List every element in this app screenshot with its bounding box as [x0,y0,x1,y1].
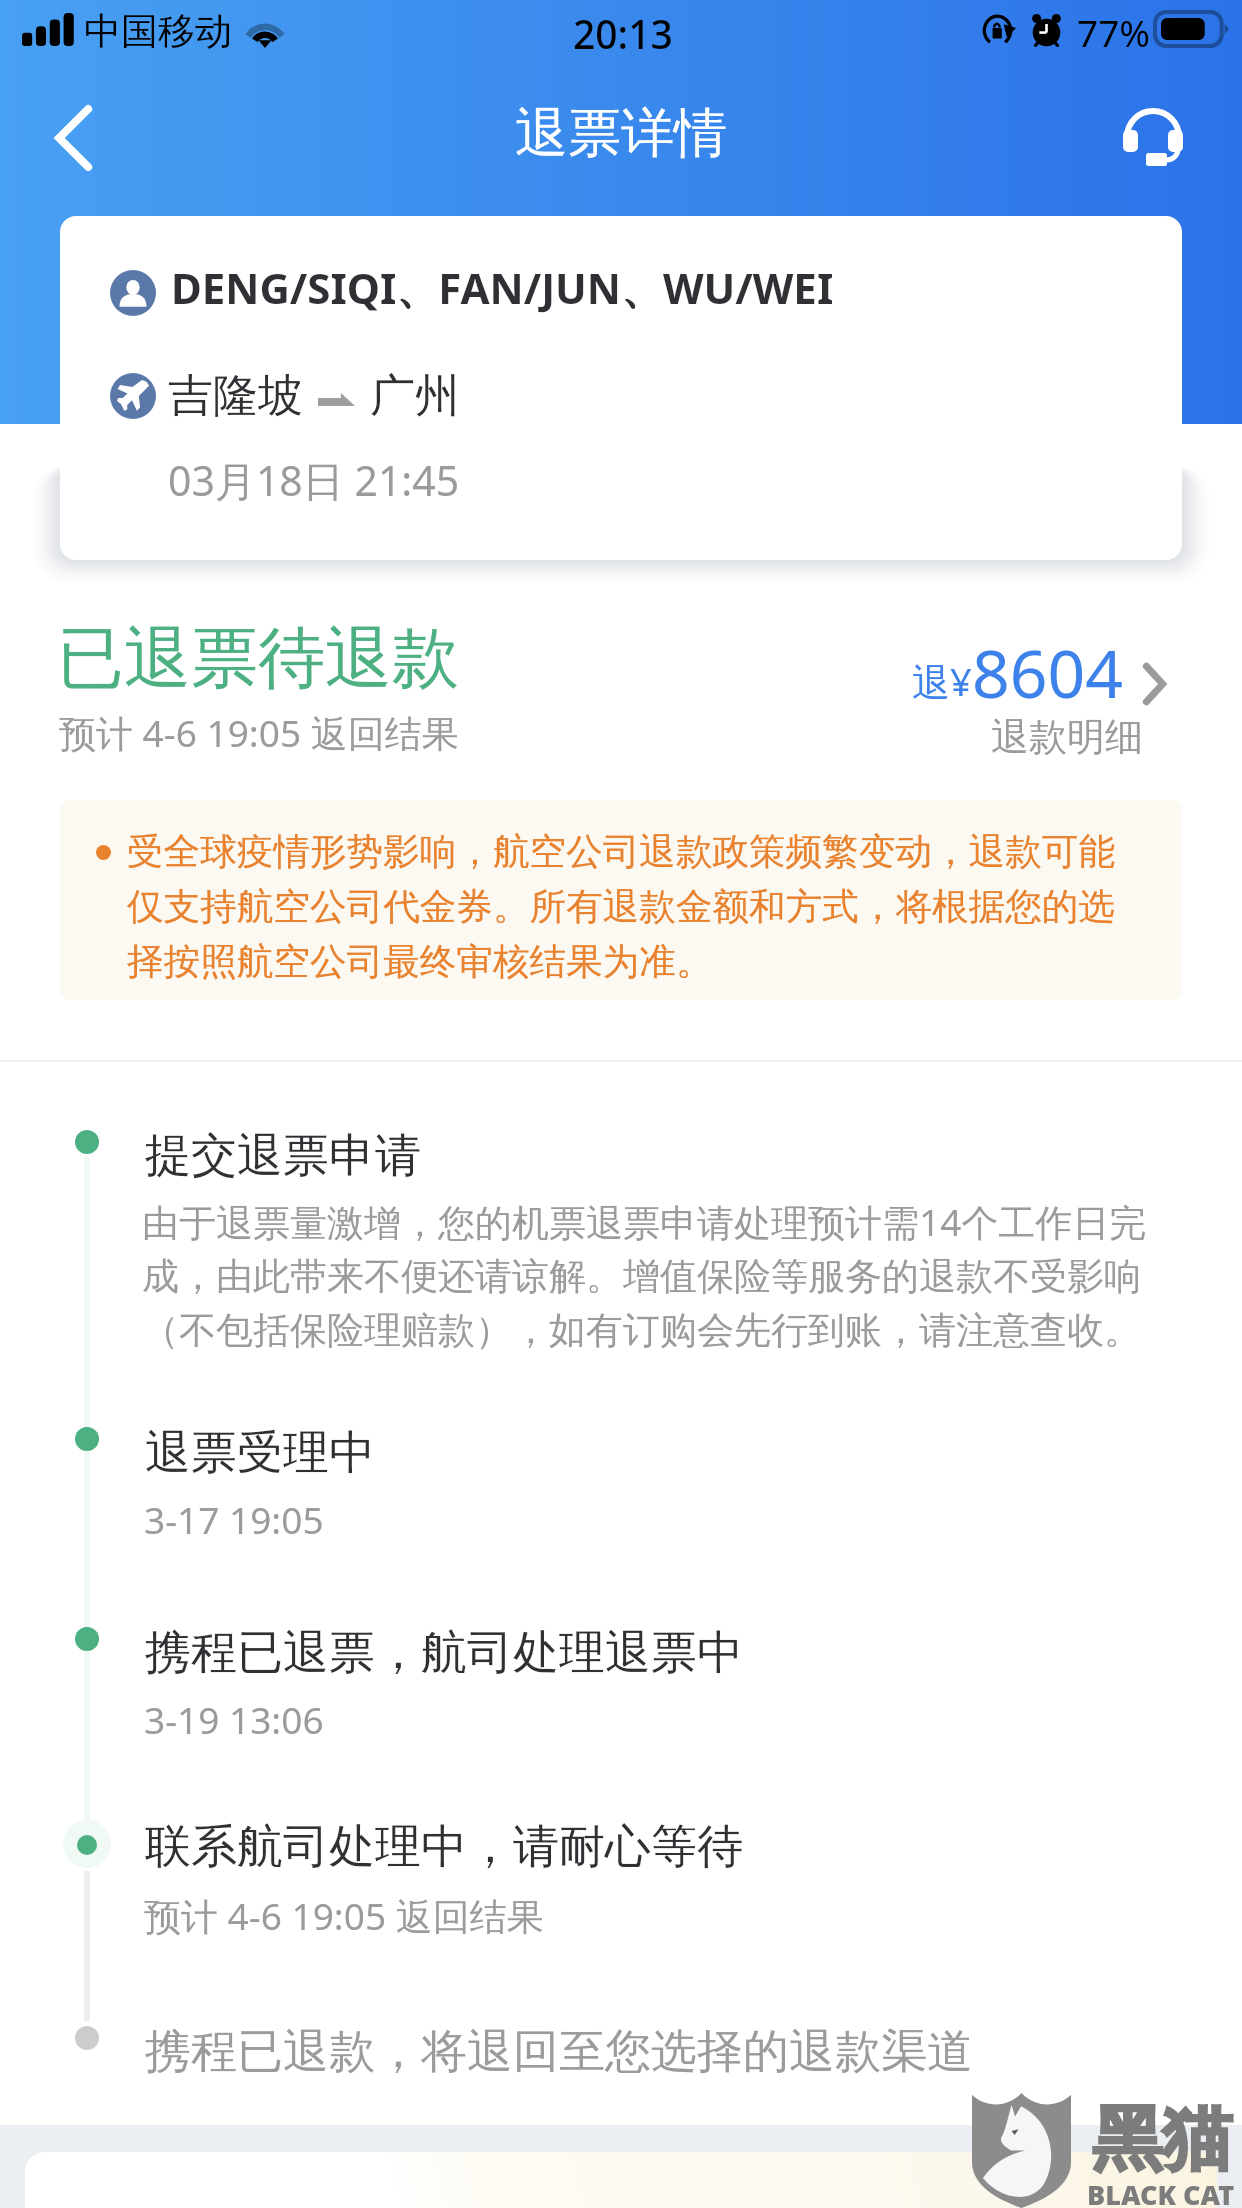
staticText: 提交退票申请 [145,1127,421,1185]
button[interactable]: Back [20,83,130,193]
staticText: 8604 [972,627,1124,717]
staticText: 携程已退票，航司处理退票中 [145,1624,743,1682]
staticText: 03月18日 21:45 [168,452,460,508]
staticText: 77% [1077,7,1151,57]
staticText: 退票受理中 [145,1424,375,1482]
staticText: 3-19 13:06 [144,1694,324,1744]
staticText: 携程已退款，将退回至您选择的退款渠道 [145,2023,973,2081]
staticText: 联系航司处理中，请耐心等待 [145,1818,743,1876]
staticText: 黑猫 [1092,2096,1232,2184]
staticText: 预计 4-6 19:05 返回结果 [59,707,459,758]
button[interactable]: Customer service [1098,83,1208,193]
staticText: 广州 [370,368,460,425]
staticText: BLACK CAT [1087,2176,1235,2208]
staticText: 受全球疫情形势影响，航空公司退款政策频繁变动，退款可能仅支持航空公司代金券。所有… [127,829,1132,985]
button[interactable]: 退¥ [884,613,1182,778]
staticText: 预计 4-6 19:05 返回结果 [144,1890,544,1941]
staticText: DENG/SIQI、FAN/JUN、WU/WEI [171,259,834,316]
staticText: 已退票待退款 [57,616,459,700]
staticText: 由于退票量激增，您的机票退票申请处理预计需14个工作日完成，由此带来不便还请谅解… [142,1196,1168,1354]
staticText: 3-17 19:05 [144,1494,324,1544]
staticText: 吉隆坡 [168,368,303,425]
staticText: 中国移动 [84,8,232,55]
button[interactable] [60,216,1182,560]
staticText: 退票详情 [515,100,727,167]
staticText: 退款明细 [991,713,1143,761]
staticText: 20:13 [573,7,673,60]
staticText: 退¥ [912,655,972,707]
